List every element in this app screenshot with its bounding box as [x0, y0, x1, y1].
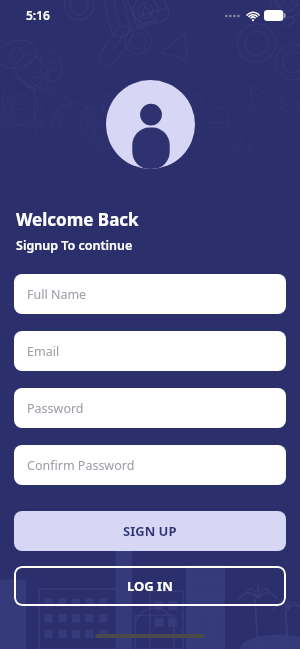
button[interactable]: LOG IN: [14, 566, 286, 606]
button[interactable]: SIGN UP: [14, 511, 286, 551]
staticText: Email: [27, 343, 60, 360]
button[interactable]: Password: [14, 388, 286, 428]
staticText: Confirm Password: [27, 457, 135, 474]
staticText: SIGN UP: [123, 522, 177, 540]
button[interactable]: Email: [14, 331, 286, 371]
staticText: LOG IN: [127, 577, 173, 595]
staticText: 5:16: [26, 7, 50, 23]
staticText: Full Name: [27, 286, 87, 303]
button[interactable]: Confirm Password: [14, 445, 286, 485]
staticText: Welcome Back: [16, 208, 139, 231]
staticText: Password: [27, 400, 84, 417]
button[interactable]: Full Name: [14, 274, 286, 314]
staticText: Signup To continue: [16, 237, 133, 254]
